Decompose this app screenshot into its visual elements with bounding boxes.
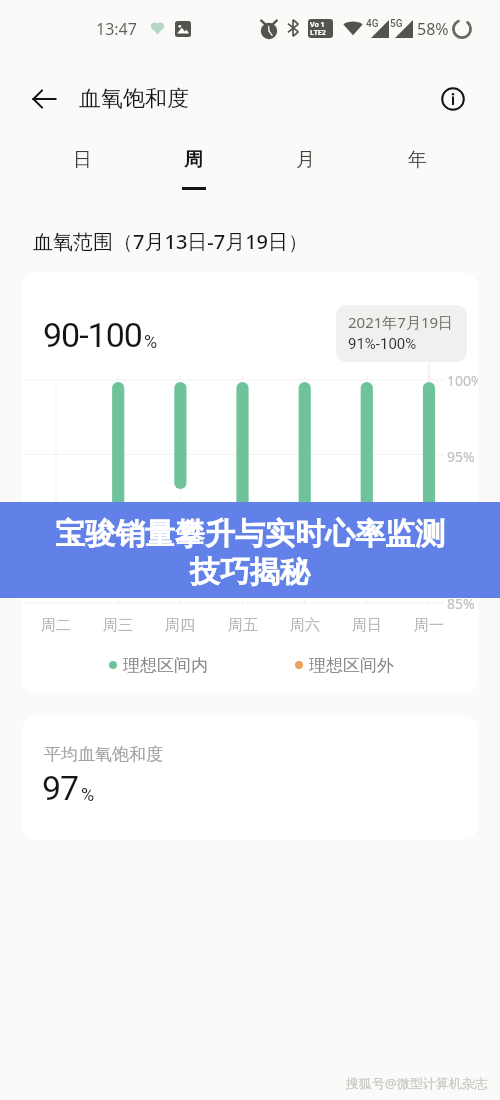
staticText: 90-100 bbox=[43, 315, 142, 355]
staticText: 日 bbox=[73, 148, 92, 172]
staticText: 周五 bbox=[228, 616, 258, 635]
staticText: 月 bbox=[296, 148, 315, 172]
staticText: 91%-100% bbox=[348, 335, 417, 353]
staticText: 5G bbox=[390, 18, 403, 30]
staticText: 理想区间外 bbox=[309, 655, 394, 676]
staticText: 周 bbox=[184, 148, 203, 172]
staticText: 血氧范围（7月13日-7月19日） bbox=[33, 228, 309, 255]
staticText: 周日 bbox=[352, 616, 382, 635]
staticText: 周一 bbox=[414, 616, 444, 635]
staticText: % bbox=[144, 331, 158, 352]
staticText: 搜狐号@微型计算机杂志 bbox=[346, 1074, 488, 1092]
staticText: 4G bbox=[366, 18, 379, 30]
staticText: 年 bbox=[408, 148, 427, 172]
staticText: 周六 bbox=[290, 616, 320, 635]
button[interactable]: 年 bbox=[361, 140, 473, 195]
staticText: 周四 bbox=[165, 616, 195, 635]
staticText: LTE2 bbox=[310, 28, 326, 38]
staticText: 周三 bbox=[103, 616, 133, 635]
staticText: 平均血氧饱和度 bbox=[44, 744, 163, 765]
staticText: 85% bbox=[447, 594, 475, 613]
button[interactable]: Back bbox=[22, 77, 66, 121]
staticText: Vo 1 bbox=[310, 20, 325, 30]
staticText: 理想区间内 bbox=[123, 655, 208, 676]
button[interactable]: 月 bbox=[249, 140, 361, 195]
button[interactable]: Info bbox=[433, 79, 473, 119]
staticText: 100% bbox=[447, 371, 478, 390]
staticText: 95% bbox=[447, 447, 475, 466]
button[interactable]: 日 bbox=[27, 140, 138, 195]
staticText: 58% bbox=[417, 18, 449, 40]
button[interactable]: 周 bbox=[138, 140, 249, 195]
staticText: 97 bbox=[42, 768, 79, 808]
staticText: 13:47 bbox=[96, 18, 137, 40]
staticText: 宝骏销量攀升与实时心率监测 技巧揭秘 bbox=[55, 515, 445, 591]
staticText: 2021年7月19日 bbox=[348, 312, 454, 332]
staticText: % bbox=[81, 784, 95, 805]
staticText: 周二 bbox=[41, 616, 71, 635]
staticText: 血氧饱和度 bbox=[79, 85, 189, 113]
